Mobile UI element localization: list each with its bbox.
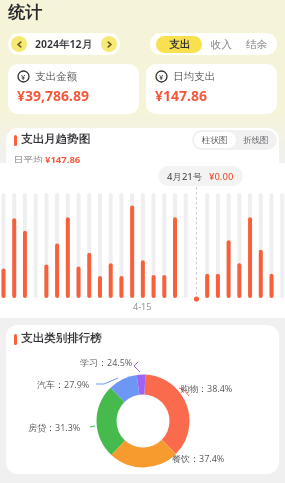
button[interactable]: 折线图 bbox=[236, 135, 275, 146]
staticText: 柱状图 bbox=[202, 135, 228, 146]
button[interactable]: 收入 bbox=[202, 38, 237, 51]
staticText: 4-15 bbox=[133, 300, 152, 312]
staticText: 学习：24.5% bbox=[80, 356, 133, 368]
staticText: 统计 bbox=[8, 2, 42, 23]
staticText: 餐饮：37.4% bbox=[172, 452, 225, 464]
staticText: 汽车：27.9% bbox=[37, 378, 90, 390]
staticText: 4月21号 bbox=[167, 170, 203, 183]
staticText: ¥ bbox=[21, 72, 26, 82]
staticText: 折线图 bbox=[243, 135, 269, 146]
staticText: ¥ bbox=[159, 72, 164, 82]
staticText: 2024年12月 bbox=[35, 37, 93, 51]
staticText: 房贷：31.3% bbox=[28, 421, 81, 433]
button[interactable]: 2024年12月 bbox=[8, 33, 120, 55]
button[interactable]: 结余 bbox=[237, 38, 272, 51]
button[interactable]: ¥ bbox=[8, 64, 139, 114]
staticText: ¥39,786.89 bbox=[17, 86, 89, 105]
staticText: 结余 bbox=[246, 38, 267, 51]
staticText: 日平均 bbox=[14, 153, 45, 166]
staticText: 购物：38.4% bbox=[180, 382, 233, 394]
staticText: 支出月趋势图 bbox=[21, 132, 90, 146]
button[interactable]: 4月21号 bbox=[158, 166, 243, 186]
button[interactable]: 柱状图 bbox=[194, 132, 236, 148]
staticText: ¥147.86 bbox=[155, 86, 207, 105]
button[interactable] bbox=[11, 36, 27, 52]
button[interactable]: 支出 bbox=[156, 36, 202, 53]
staticText: ¥147.86 bbox=[45, 153, 81, 166]
button[interactable]: ¥ bbox=[146, 64, 277, 114]
staticText: 支出 bbox=[169, 38, 190, 51]
staticText: 日均支出 bbox=[173, 70, 215, 83]
button[interactable] bbox=[101, 36, 117, 52]
staticText: 支出金额 bbox=[35, 70, 77, 83]
staticText: 支出类别排行榜 bbox=[21, 331, 102, 345]
staticText: ¥0.00 bbox=[209, 170, 234, 183]
staticText: 收入 bbox=[211, 38, 232, 51]
